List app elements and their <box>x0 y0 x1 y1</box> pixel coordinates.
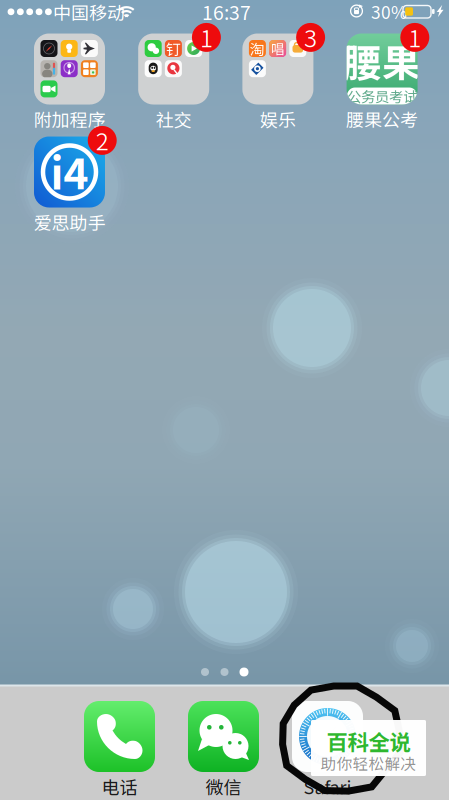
staticText: 唱 <box>271 39 284 58</box>
staticText: 1 <box>408 19 421 54</box>
staticText: 助你轻松解决 <box>320 752 416 774</box>
staticText: 社交 <box>156 106 192 132</box>
staticText: 百科全说 <box>326 726 410 756</box>
staticText: 附加程序 <box>33 106 105 132</box>
button[interactable]: 腰果 <box>332 33 432 133</box>
staticText: 钉 <box>166 38 181 59</box>
staticText: Safari <box>303 773 351 800</box>
button[interactable]: 钉 <box>124 33 224 133</box>
staticText: 淘 <box>250 38 265 59</box>
staticText: 微信 <box>205 773 241 800</box>
staticText: 娱乐 <box>260 106 296 132</box>
staticText: 爱思助手 <box>33 209 105 235</box>
staticText: 电话 <box>101 773 137 800</box>
button[interactable]: 附加程序 <box>19 33 119 133</box>
staticText: 中国移动 <box>53 0 125 25</box>
button[interactable]: 微信 <box>173 701 273 800</box>
button[interactable]: i4 <box>19 136 119 236</box>
button[interactable]: 淘 <box>228 33 328 133</box>
button[interactable]: Safari <box>277 701 377 800</box>
staticText: 公务员考试 <box>347 86 417 106</box>
staticText: 腰果公考 <box>346 106 418 132</box>
staticText: 腰果 <box>343 32 421 88</box>
staticText: 3 <box>304 19 317 54</box>
staticText: 2 <box>96 122 109 157</box>
staticText: 16:37 <box>202 0 251 25</box>
staticText: i4 <box>50 140 88 202</box>
staticText: 1 <box>200 19 213 54</box>
staticText: 30% <box>371 0 407 24</box>
button[interactable]: 电话 <box>69 701 169 800</box>
